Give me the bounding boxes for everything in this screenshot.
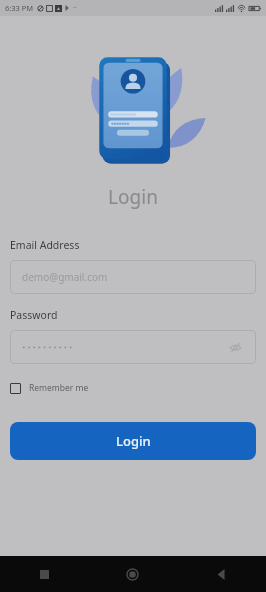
button[interactable]: Remember me — [9, 380, 90, 396]
staticText: Login — [0, 184, 266, 210]
staticText: Remember me — [29, 382, 89, 394]
staticText: Password — [10, 308, 58, 322]
staticText: Email Address — [10, 238, 80, 252]
staticText: Login — [116, 432, 151, 450]
button[interactable]: Login — [10, 422, 256, 460]
button[interactable]: Back — [177, 556, 266, 592]
staticText: 6:33 PM — [5, 3, 34, 13]
button[interactable]: Home — [88, 556, 177, 592]
button[interactable]: Show password — [226, 338, 244, 356]
button[interactable]: Recent apps — [0, 556, 88, 592]
staticText: ·· — [73, 3, 77, 13]
button[interactable]: Show password — [10, 330, 256, 364]
button[interactable]: demo@gmail.com — [10, 260, 256, 294]
staticText: demo@gmail.com — [22, 270, 108, 284]
